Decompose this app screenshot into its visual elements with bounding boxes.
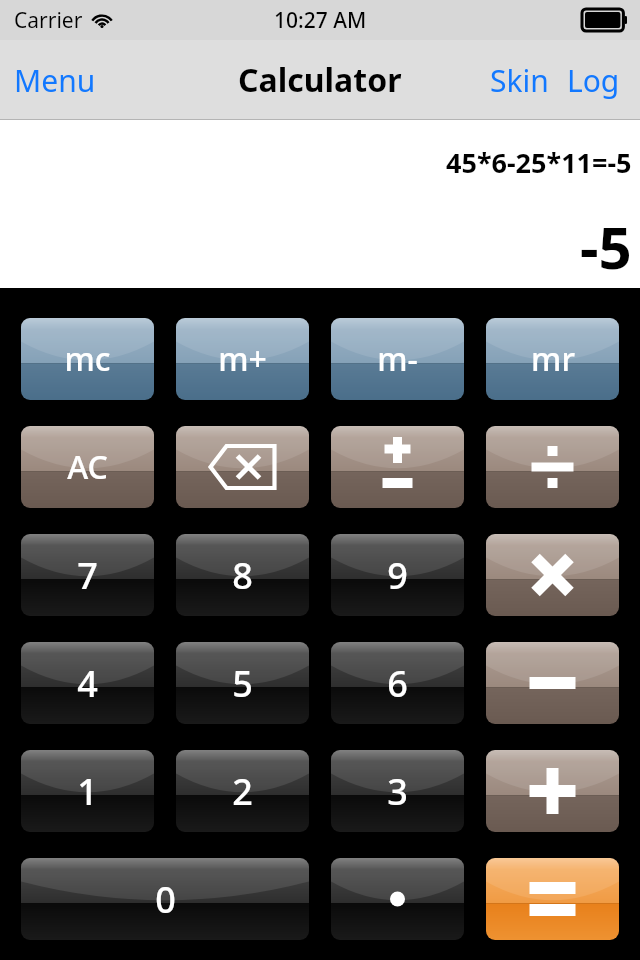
staticText: 5 — [232, 659, 253, 708]
button[interactable]: 0 — [21, 858, 309, 940]
button[interactable]: 1 — [21, 750, 154, 832]
button[interactable]: Decimal point — [331, 858, 464, 940]
staticText: Log — [567, 60, 620, 101]
staticText: mc — [64, 337, 111, 381]
button[interactable]: Backspace — [176, 426, 309, 508]
staticText: 6 — [387, 659, 408, 708]
button[interactable]: m- — [331, 318, 464, 400]
button[interactable]: Log — [567, 60, 620, 101]
staticText: mr — [531, 337, 575, 381]
button[interactable]: Multiply — [486, 534, 619, 616]
staticText: Calculator — [238, 58, 402, 102]
button[interactable]: mc — [21, 318, 154, 400]
staticText: 3 — [387, 767, 408, 816]
staticText: AC — [67, 445, 108, 489]
button[interactable]: m+ — [176, 318, 309, 400]
button[interactable]: Divide — [486, 426, 619, 508]
button[interactable]: 9 — [331, 534, 464, 616]
staticText: 8 — [232, 551, 253, 600]
button[interactable]: Minus — [486, 642, 619, 724]
button[interactable]: Skin — [490, 60, 549, 101]
button[interactable]: 6 — [331, 642, 464, 724]
staticText: 45*6-25*11=-5 — [446, 144, 632, 181]
staticText: Menu — [14, 60, 96, 101]
staticText: 1 — [77, 767, 98, 816]
staticText: m- — [377, 337, 418, 381]
button[interactable]: 3 — [331, 750, 464, 832]
staticText: 2 — [232, 767, 253, 816]
button[interactable]: 7 — [21, 534, 154, 616]
button[interactable]: Plus minus — [331, 426, 464, 508]
staticText: -5 — [580, 207, 632, 286]
staticText: 0 — [155, 875, 176, 924]
staticText: 10:27 AM — [274, 6, 367, 35]
button[interactable]: mr — [486, 318, 619, 400]
button[interactable]: 4 — [21, 642, 154, 724]
staticText: Skin — [490, 60, 549, 101]
staticText: Carrier — [14, 6, 83, 35]
button[interactable]: 5 — [176, 642, 309, 724]
staticText: m+ — [218, 337, 267, 381]
button[interactable]: Menu — [14, 60, 96, 101]
button[interactable]: Equals — [486, 858, 619, 940]
button[interactable]: 2 — [176, 750, 309, 832]
button[interactable]: 8 — [176, 534, 309, 616]
button[interactable]: AC — [21, 426, 154, 508]
staticText: 7 — [77, 551, 98, 600]
button[interactable]: Plus — [486, 750, 619, 832]
staticText: 9 — [387, 551, 408, 600]
staticText: 4 — [77, 659, 98, 708]
